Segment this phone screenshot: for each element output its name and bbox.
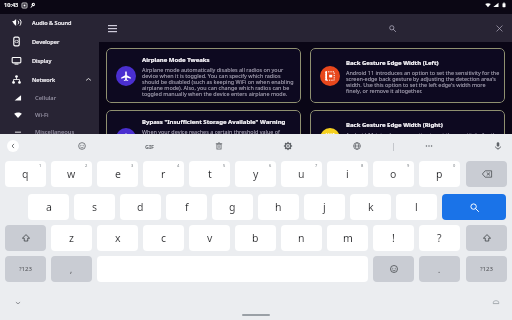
button[interactable]: Back [7, 140, 19, 152]
staticText: b [252, 231, 259, 245]
staticText: Bypass "Insufficient Storage Available" … [142, 118, 286, 126]
button[interactable]: ! [373, 225, 414, 251]
staticText: u [298, 167, 305, 181]
button[interactable]: Miscellaneous [0, 123, 99, 140]
staticText: g [229, 200, 236, 214]
button[interactable]: l [396, 194, 437, 220]
button[interactable]: Hide keyboard [12, 297, 23, 308]
staticText: o [390, 167, 397, 181]
staticText: Android 11 introduces an option to set t… [346, 131, 502, 157]
staticText: 3 [131, 163, 134, 168]
button[interactable]: n [281, 225, 322, 251]
staticText: z [69, 231, 74, 245]
button[interactable]: Audio & Sound [0, 13, 99, 32]
button[interactable]: y [235, 161, 276, 187]
staticText: m [343, 231, 353, 245]
button[interactable]: d [120, 194, 161, 220]
staticText: Cellular [35, 94, 57, 102]
button[interactable]: Menu [104, 20, 120, 36]
staticText: Audio & Sound [32, 19, 72, 27]
staticText: Back Gesture Edge Width (Right) [346, 121, 443, 129]
staticText: 5 [223, 163, 226, 168]
staticText: , [70, 264, 73, 275]
button[interactable]: ?123 [5, 256, 46, 282]
button[interactable]: ? [419, 225, 460, 251]
button[interactable]: trash [211, 138, 227, 154]
button[interactable]: w [51, 161, 92, 187]
staticText: 0 [453, 163, 456, 168]
button[interactable]: Airplane Mode Tweaks [106, 48, 301, 103]
button[interactable]: ?123 [466, 256, 507, 282]
button[interactable]: Emoji [373, 256, 414, 282]
staticText: f [185, 200, 189, 214]
staticText: i [346, 167, 349, 181]
button[interactable]: Display [0, 51, 99, 70]
button[interactable]: q [5, 161, 46, 187]
button[interactable]: . [419, 256, 460, 282]
staticText: s [92, 200, 98, 214]
button[interactable]: Back Gesture Edge Width (Right) [310, 110, 505, 165]
button[interactable]: Back Gesture Edge Width (Left) [310, 48, 505, 103]
button[interactable]: Close [491, 20, 507, 36]
button[interactable]: Wi-Fi [0, 106, 99, 123]
button[interactable]: m [327, 225, 368, 251]
staticText: e [115, 167, 121, 181]
staticText: n [298, 231, 305, 245]
staticText: Miscellaneous [35, 128, 75, 136]
button[interactable]: Search [384, 20, 400, 36]
button[interactable]: dots [421, 138, 437, 154]
button[interactable]: mic [490, 138, 506, 154]
button[interactable]: k [350, 194, 391, 220]
button[interactable]: GIF [142, 138, 158, 154]
button[interactable]: globe [349, 138, 365, 154]
button[interactable]: s [74, 194, 115, 220]
button[interactable]: Search [442, 194, 506, 220]
staticText: 9 [407, 163, 410, 168]
staticText: c [161, 231, 167, 245]
staticText: Network [32, 76, 56, 84]
button[interactable]: h [258, 194, 299, 220]
staticText: y [253, 167, 259, 181]
staticText: p [436, 167, 443, 181]
staticText: t [208, 167, 212, 181]
staticText: Display [32, 57, 52, 65]
button[interactable]: Resize keyboard [490, 297, 501, 308]
button[interactable]: j [304, 194, 345, 220]
button[interactable]: u [281, 161, 322, 187]
button[interactable]: t [189, 161, 230, 187]
staticText: l [415, 200, 418, 214]
staticText: v [207, 231, 213, 245]
button[interactable]: o [373, 161, 414, 187]
button[interactable]: z [51, 225, 92, 251]
staticText: w [67, 167, 76, 181]
button[interactable]: Cellular [0, 89, 99, 106]
button[interactable]: c [143, 225, 184, 251]
button[interactable]: b [235, 225, 276, 251]
button[interactable]: sticker [74, 138, 90, 154]
button[interactable]: x [97, 225, 138, 251]
button[interactable]: g [212, 194, 253, 220]
button[interactable]: i [327, 161, 368, 187]
button[interactable]: Backspace [466, 161, 507, 187]
button[interactable]: p [419, 161, 460, 187]
button[interactable]: Shift [466, 225, 507, 251]
button[interactable]: Shift [5, 225, 46, 251]
button[interactable]: f [166, 194, 207, 220]
staticText: 10:43 [4, 1, 19, 9]
button[interactable]: r [143, 161, 184, 187]
staticText: 6 [269, 163, 272, 168]
staticText: h [275, 200, 282, 214]
staticText: a [46, 200, 52, 214]
button[interactable]: e [97, 161, 138, 187]
button[interactable]: a [28, 194, 69, 220]
staticText: d [137, 200, 144, 214]
button[interactable]: Developer [0, 32, 99, 51]
staticText: 8 [361, 163, 364, 168]
button[interactable]: Network [0, 70, 99, 89]
staticText: x [115, 231, 121, 245]
button[interactable]: gear [280, 138, 296, 154]
button[interactable]: , [51, 256, 92, 282]
button[interactable]: Bypass "Insufficient Storage Available" … [106, 110, 301, 165]
button[interactable]: v [189, 225, 230, 251]
